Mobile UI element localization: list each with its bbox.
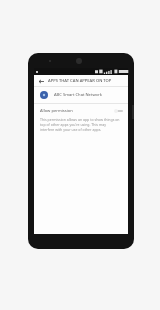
staticText: APPS THAT CAN APPEAR ON TOP [48, 78, 112, 84]
button[interactable]: Allow permission [34, 104, 128, 117]
staticText: Allow permission [40, 108, 73, 114]
other: Allow permission toggle [114, 108, 123, 114]
button[interactable]: Back [37, 77, 45, 85]
staticText: This permission allows an app to show th… [40, 117, 121, 132]
button[interactable]: ABC Smart Chat Network [34, 87, 128, 103]
staticText: ABC Smart Chat Network [54, 92, 102, 98]
